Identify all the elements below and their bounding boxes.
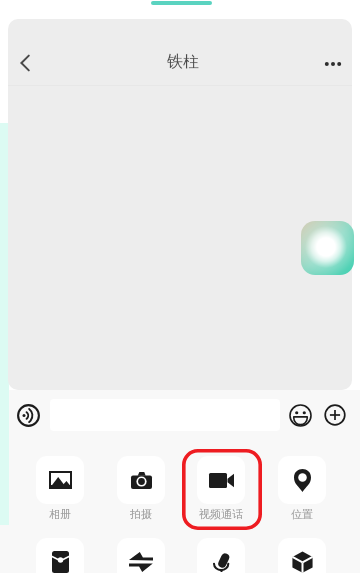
button[interactable]: 相册: [36, 456, 84, 521]
staticText: 视频通话: [199, 507, 243, 521]
staticText: 铁柱: [167, 52, 199, 72]
button[interactable]: Avatar: [301, 221, 354, 275]
staticText: 相册: [49, 507, 71, 521]
button[interactable]: Back: [11, 49, 39, 77]
button[interactable]: 位置: [278, 456, 326, 521]
button[interactable]: 我的收藏: [278, 538, 326, 573]
staticText: 位置: [291, 507, 313, 521]
button[interactable]: 拍摄: [117, 456, 165, 521]
button[interactable]: Emoji: [289, 404, 312, 427]
button[interactable]: 红包: [36, 538, 84, 573]
button[interactable]: More: [316, 47, 350, 81]
staticText: 拍摄: [130, 507, 152, 521]
button[interactable]: 语音输入: [197, 538, 245, 573]
button[interactable]: 转账: [117, 538, 165, 573]
button[interactable]: More options: [324, 404, 346, 426]
button[interactable]: Voice input: [17, 404, 40, 427]
button[interactable]: 视频通话: [197, 456, 245, 521]
